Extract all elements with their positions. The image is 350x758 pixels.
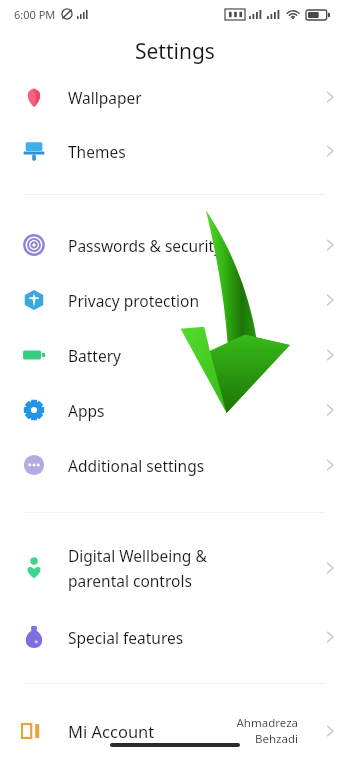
staticText: Additional settings <box>68 455 205 476</box>
staticText: Mi Account <box>68 720 155 742</box>
button[interactable]: Themes <box>0 124 350 178</box>
staticText: Digital Wellbeing & <box>68 545 207 566</box>
staticText: parental controls <box>68 570 192 591</box>
staticText: Special features <box>68 627 184 648</box>
staticText: Apps <box>68 400 105 421</box>
staticText: Privacy protection <box>68 290 200 311</box>
button[interactable]: Additional settings <box>0 438 350 492</box>
staticText: Passwords & security <box>68 235 223 256</box>
button[interactable]: Privacy protection <box>0 273 350 327</box>
staticText: Wallpaper <box>68 87 142 108</box>
button[interactable]: Wallpaper <box>0 70 350 124</box>
staticText: 6:00 PM <box>14 7 56 22</box>
staticText: Settings <box>135 37 215 66</box>
staticText: Behzadi <box>255 731 298 747</box>
staticText: Battery <box>68 345 122 366</box>
button[interactable]: Special features <box>0 610 350 664</box>
button[interactable]: Battery <box>0 328 350 382</box>
staticText: Themes <box>68 141 126 162</box>
button[interactable]: Digital Wellbeing & <box>0 536 350 600</box>
other: Arrow pointing down to settings <box>176 210 291 413</box>
button[interactable]: Apps <box>0 383 350 437</box>
button[interactable]: Mi Account <box>0 705 350 757</box>
button[interactable]: Passwords & security <box>0 218 350 272</box>
staticText: Ahmadreza <box>236 715 298 731</box>
